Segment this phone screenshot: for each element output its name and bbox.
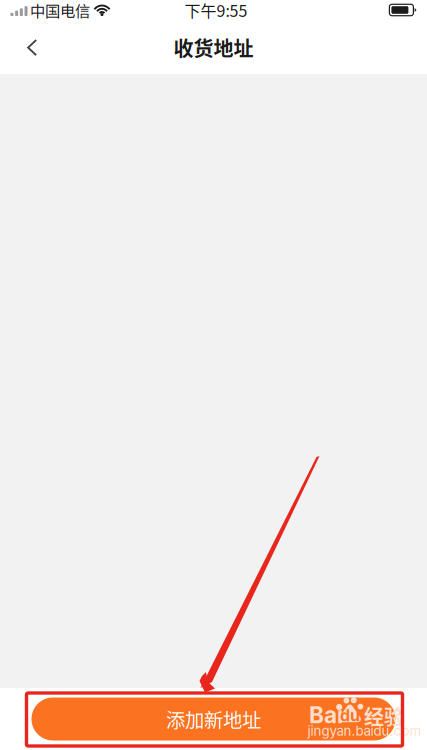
staticText: 收货地址 [173, 33, 253, 62]
staticText: 添加新地址 [166, 705, 261, 733]
staticText: jingyan.baidu.com [307, 723, 421, 739]
staticText: du [340, 706, 360, 725]
staticText: Bai [309, 701, 343, 729]
staticText: 经验 [364, 701, 404, 730]
button[interactable]: 添加新地址 [31, 697, 395, 740]
staticText: 下午9:55 [184, 0, 247, 22]
staticText: 中国电信 [30, 0, 90, 21]
button[interactable]: 返回 [9, 25, 55, 69]
